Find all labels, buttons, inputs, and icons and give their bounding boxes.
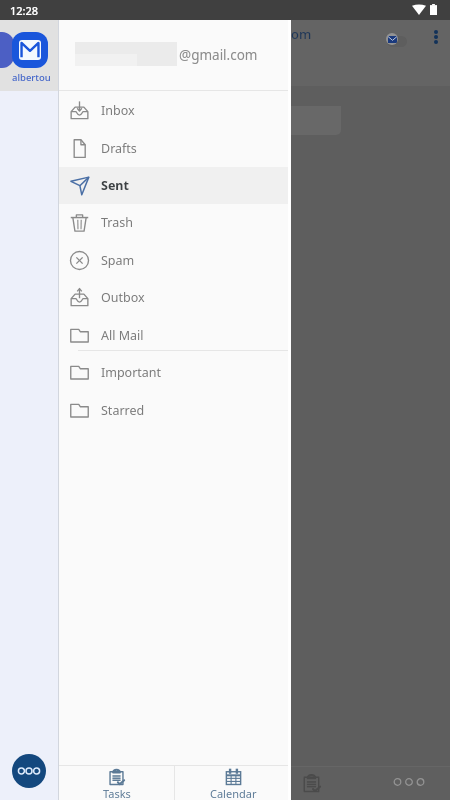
staticText: om [291, 25, 312, 43]
staticText: Drafts [101, 140, 137, 157]
button[interactable]: Toggle unread [387, 36, 407, 47]
button[interactable]: Outbox [59, 279, 291, 316]
staticText: albertou [12, 71, 51, 84]
staticText: Calendar [210, 786, 257, 800]
button[interactable]: More [12, 754, 46, 788]
staticText: 12:28 [10, 3, 39, 18]
button[interactable]: Trash [59, 204, 291, 241]
button[interactable]: Sent [59, 167, 291, 204]
staticText: Spam [101, 252, 135, 269]
button[interactable]: Important [59, 354, 291, 391]
staticText: Trash [101, 214, 133, 231]
staticText: Sent [101, 177, 129, 194]
button[interactable]: Inbox [59, 92, 291, 129]
button[interactable]: albertou app [12, 32, 48, 68]
button[interactable]: Spam [59, 242, 291, 279]
staticText: Tasks [103, 786, 131, 800]
staticText: @gmail.com [179, 46, 258, 64]
staticText: Inbox [101, 102, 135, 119]
button[interactable]: All Mail [59, 317, 291, 354]
staticText: All Mail [101, 327, 144, 344]
staticText: Starred [101, 402, 145, 419]
button[interactable]: Tasks [59, 766, 174, 800]
button[interactable]: Calendar [175, 766, 291, 800]
staticText: Outbox [101, 289, 145, 306]
button[interactable]: Starred [59, 392, 291, 429]
button[interactable]: More options [425, 26, 447, 48]
button[interactable]: Drafts [59, 130, 291, 167]
staticText: Important [101, 364, 162, 381]
